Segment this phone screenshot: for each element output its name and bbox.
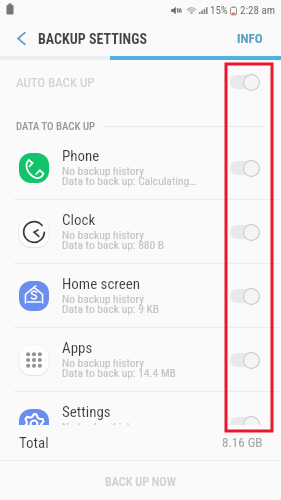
- button[interactable]: INFO: [225, 21, 281, 56]
- button[interactable]: Home screen: [0, 264, 281, 327]
- staticText: Phone: [62, 147, 100, 165]
- staticText: Total: [19, 434, 49, 452]
- staticText: Settings: [62, 403, 111, 421]
- button[interactable]: BACK UP NOW: [0, 461, 281, 500]
- staticText: 15%: [210, 4, 228, 17]
- button[interactable]: Apps: [0, 328, 281, 391]
- button[interactable]: Back: [0, 21, 32, 56]
- staticText: Apps: [62, 339, 93, 357]
- staticText: No backup history: [62, 292, 144, 305]
- staticText: Data to back up: 14.4 MB: [62, 366, 176, 379]
- staticText: AUTO BACK UP: [16, 75, 95, 90]
- staticText: Data to back up: Calculating…: [62, 174, 196, 187]
- staticText: No backup history: [62, 228, 144, 241]
- button[interactable]: Phone: [0, 136, 281, 199]
- staticText: No backup history: [62, 356, 144, 369]
- staticText: INFO: [237, 31, 263, 46]
- staticText: Home screen: [62, 275, 141, 293]
- button[interactable]: AUTO BACK UP: [0, 60, 281, 104]
- staticText: 2:28 am: [240, 4, 275, 17]
- staticText: No backup history: [62, 420, 144, 433]
- staticText: BACK UP NOW: [105, 475, 176, 489]
- staticText: 8.16 GB: [222, 435, 263, 450]
- staticText: Data to back up: 880 B: [62, 238, 165, 251]
- button[interactable]: Clock: [0, 200, 281, 263]
- button[interactable]: Settings: [0, 392, 281, 455]
- staticText: BACKUP SETTINGS: [38, 31, 147, 47]
- staticText: DATA TO BACK UP: [16, 120, 96, 133]
- staticText: No backup history: [62, 164, 144, 177]
- staticText: Data to back up: 9 KB: [62, 302, 160, 315]
- staticText: Clock: [62, 211, 96, 229]
